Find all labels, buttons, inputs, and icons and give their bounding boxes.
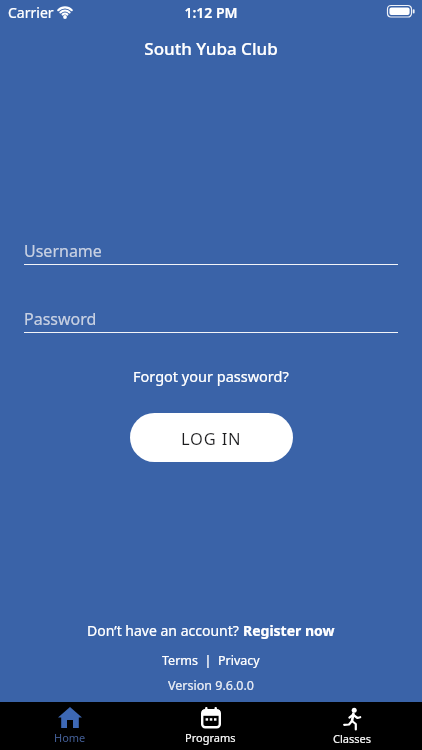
staticText: Privacy <box>218 652 260 669</box>
button[interactable]: Terms <box>162 652 198 669</box>
staticText: Username <box>24 240 102 262</box>
button[interactable]: Programs <box>140 702 281 750</box>
staticText: South Yuba Club <box>0 37 422 60</box>
staticText: LOG IN <box>181 427 242 449</box>
staticText: Classes <box>333 731 371 746</box>
staticText: Register now <box>243 621 335 640</box>
button[interactable]: Password <box>24 307 398 333</box>
staticText: Password <box>24 308 97 330</box>
button[interactable]: LOG IN <box>130 413 293 462</box>
staticText: Version 9.6.0.0 <box>0 677 422 694</box>
staticText: Carrier <box>8 3 54 22</box>
staticText: Programs <box>185 730 236 745</box>
staticText: | <box>198 652 218 669</box>
button[interactable]: Classes <box>281 702 422 750</box>
button[interactable]: Privacy <box>218 652 260 669</box>
button[interactable]: Username <box>24 239 398 265</box>
button[interactable]: Register now <box>243 621 335 640</box>
staticText: 1:12 PM <box>0 3 422 22</box>
staticText: Terms <box>162 652 198 669</box>
staticText: Home <box>54 730 86 745</box>
staticText: Don’t have an account? <box>87 621 243 640</box>
button[interactable]: Forgot your password? <box>133 366 289 386</box>
staticText: Forgot your password? <box>133 366 289 386</box>
button[interactable]: Home <box>0 702 140 750</box>
